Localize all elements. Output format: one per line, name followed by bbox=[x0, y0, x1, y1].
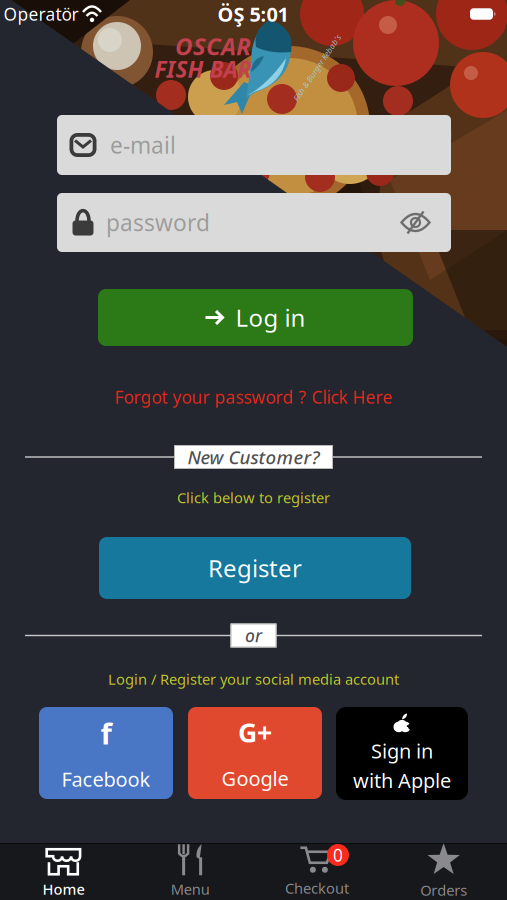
button[interactable]: Register bbox=[99, 537, 411, 599]
staticText: 0 bbox=[333, 843, 343, 866]
staticText: Menu bbox=[171, 879, 210, 899]
staticText: Operatör bbox=[3, 2, 78, 25]
staticText: G+ bbox=[238, 714, 272, 750]
staticText: Log in bbox=[235, 302, 305, 333]
button[interactable]: Checkout bbox=[253, 844, 380, 898]
staticText: Fish & Burger Kebab's bbox=[278, 63, 356, 73]
staticText: f bbox=[100, 714, 111, 753]
staticText: OSCAR bbox=[175, 30, 251, 62]
button[interactable]: Log in bbox=[98, 289, 413, 346]
staticText: with Apple bbox=[353, 767, 451, 794]
staticText: Checkout bbox=[285, 878, 349, 898]
staticText: ÖŞ 5:01 bbox=[217, 1, 288, 27]
staticText: Register bbox=[208, 552, 302, 584]
staticText: Click below to register bbox=[177, 488, 330, 507]
button[interactable]: Show password bbox=[400, 211, 430, 233]
staticText: Sign in bbox=[371, 737, 433, 764]
staticText: Home bbox=[42, 879, 84, 899]
staticText: Orders bbox=[420, 880, 467, 900]
button[interactable]: f bbox=[39, 707, 173, 799]
staticText: Login / Register your social media accou… bbox=[108, 669, 399, 689]
staticText: New Customer? bbox=[187, 445, 319, 469]
staticText: e-mail bbox=[110, 130, 176, 160]
button[interactable]: Home bbox=[0, 844, 127, 898]
button[interactable]: Menu bbox=[127, 844, 254, 898]
staticText: password bbox=[106, 207, 210, 237]
staticText: or bbox=[245, 624, 262, 647]
staticText: Forgot your password ? Click Here bbox=[114, 385, 392, 408]
staticText: FISH BAR bbox=[154, 54, 251, 84]
button[interactable]: Orders bbox=[380, 844, 507, 898]
button[interactable]: Forgot your password ? Click Here bbox=[114, 385, 392, 408]
button[interactable]: Sign in bbox=[336, 707, 468, 800]
button[interactable]: G+ bbox=[188, 707, 322, 799]
staticText: Google bbox=[221, 765, 288, 791]
staticText: Facebook bbox=[61, 766, 150, 792]
